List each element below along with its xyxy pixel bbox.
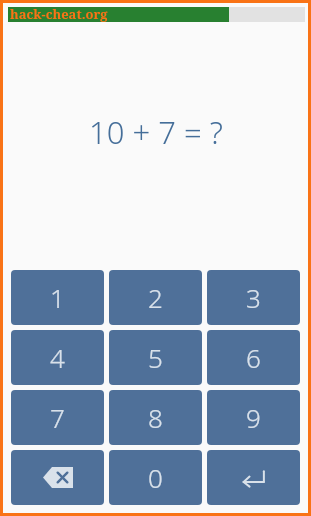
staticText: hack-cheat.org (10, 5, 108, 23)
button[interactable]: Backspace (11, 450, 104, 505)
button[interactable]: 1 (11, 270, 104, 325)
staticText: 10 + 7 = ? (89, 111, 223, 153)
button[interactable]: 0 (109, 450, 202, 505)
staticText: 7 (50, 400, 65, 435)
staticText: 9 (246, 400, 261, 435)
button[interactable]: 3 (207, 270, 300, 325)
button[interactable]: 2 (109, 270, 202, 325)
button[interactable]: 9 (207, 390, 300, 445)
button[interactable]: 8 (109, 390, 202, 445)
staticText: 1 (50, 280, 65, 315)
staticText: 8 (148, 400, 163, 435)
button[interactable]: 4 (11, 330, 104, 385)
staticText: 6 (246, 340, 261, 375)
staticText: 5 (148, 340, 163, 375)
button[interactable]: 7 (11, 390, 104, 445)
button[interactable]: Enter (207, 450, 300, 505)
staticText: 4 (50, 340, 65, 375)
staticText: 2 (148, 280, 163, 315)
button[interactable]: 5 (109, 330, 202, 385)
staticText: 3 (246, 280, 261, 315)
staticText: 0 (148, 460, 163, 495)
button[interactable]: 6 (207, 330, 300, 385)
